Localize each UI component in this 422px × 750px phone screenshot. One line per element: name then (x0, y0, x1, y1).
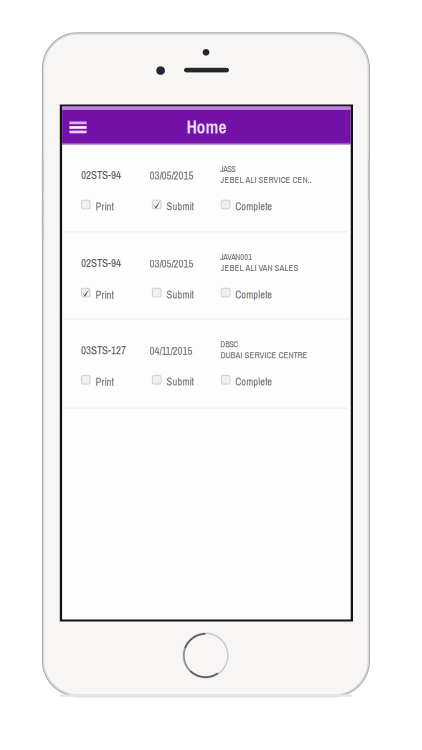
staticText: 04/11/2015 (150, 344, 193, 358)
staticText: Submit (166, 288, 193, 301)
staticText: Print (95, 375, 113, 389)
staticText: 02STS-94 (81, 256, 121, 270)
staticText: Complete (235, 375, 272, 389)
button[interactable]: Submit (152, 288, 218, 301)
button[interactable]: Complete (221, 288, 301, 301)
button[interactable]: Submit (152, 200, 218, 213)
staticText: Home (186, 115, 226, 139)
button[interactable]: Complete (221, 375, 301, 388)
button[interactable]: Print (81, 375, 147, 388)
button[interactable]: Print (81, 288, 147, 301)
button[interactable]: Menu (62, 106, 96, 144)
staticText: Complete (235, 288, 272, 301)
button[interactable]: Complete (221, 200, 301, 213)
staticText: DBSC (220, 339, 238, 350)
staticText: JEBEL ALI VAN SALES (220, 262, 298, 274)
staticText: 03/05/2015 (150, 168, 194, 183)
staticText: 03STS-127 (81, 343, 126, 358)
staticText: JAVAN001 (220, 252, 252, 263)
button[interactable]: Submit (152, 375, 218, 388)
staticText: Complete (235, 200, 272, 213)
staticText: 03/05/2015 (150, 256, 194, 271)
staticText: Submit (166, 200, 193, 213)
staticText: DUBAI SERVICE CENTRE (220, 349, 307, 361)
staticText: Submit (166, 375, 193, 389)
staticText: 02STS-94 (81, 168, 121, 182)
button[interactable]: Print (81, 200, 147, 213)
staticText: JEBEL ALI SERVICE CEN.. (220, 174, 311, 186)
staticText: JASS (220, 164, 235, 175)
staticText: Print (95, 200, 113, 214)
staticText: Print (95, 288, 113, 302)
